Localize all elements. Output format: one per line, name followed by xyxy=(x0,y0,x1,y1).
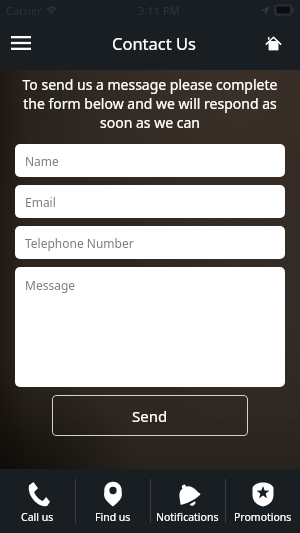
staticText: Notifications xyxy=(156,510,219,524)
button[interactable]: Notifications xyxy=(150,469,225,533)
button[interactable]: Name xyxy=(15,144,285,177)
button[interactable]: Message xyxy=(15,267,285,387)
button[interactable]: Telephone Number xyxy=(15,226,285,259)
staticText: To send us a message please complete the… xyxy=(12,75,288,132)
staticText: Call us xyxy=(21,510,54,524)
button[interactable]: Promotions xyxy=(225,469,300,533)
staticText: Message xyxy=(25,277,76,293)
staticText: Name xyxy=(25,153,59,169)
staticText: 3:11 PM xyxy=(138,3,180,18)
staticText: Contact Us xyxy=(112,32,196,54)
button[interactable]: Home xyxy=(253,25,293,65)
staticText: Promotions xyxy=(234,510,292,524)
staticText: Carrier xyxy=(6,3,42,18)
staticText: Find us xyxy=(95,510,131,524)
staticText: Telephone Number xyxy=(25,235,134,251)
button[interactable]: Call us xyxy=(0,469,75,533)
button[interactable]: Menu xyxy=(1,25,41,65)
button[interactable]: Find us xyxy=(75,469,150,533)
button[interactable]: Send xyxy=(52,395,248,436)
button[interactable]: Email xyxy=(15,185,285,218)
staticText: Send xyxy=(132,406,168,426)
staticText: Email xyxy=(25,194,56,210)
